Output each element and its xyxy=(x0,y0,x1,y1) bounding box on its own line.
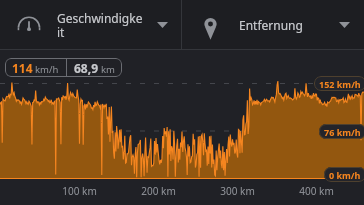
staticText: 114 xyxy=(12,60,33,76)
staticText: 200 km xyxy=(141,184,176,198)
staticText: 76 km/h xyxy=(324,126,361,138)
staticText: 100 km xyxy=(62,184,97,198)
staticText: 400 km xyxy=(299,184,334,198)
staticText: km xyxy=(101,63,115,76)
button[interactable]: Geschwindigkeit xyxy=(0,0,181,50)
staticText: Entfernung xyxy=(239,17,324,33)
staticText: 0 km/h xyxy=(329,169,361,181)
staticText: Geschwindigkeit xyxy=(57,10,144,41)
staticText: km/h xyxy=(35,63,59,76)
button[interactable]: 114 xyxy=(5,58,122,77)
button[interactable]: Entfernung xyxy=(182,0,364,50)
staticText: 68,9 xyxy=(74,60,99,76)
staticText: 300 km xyxy=(220,184,255,198)
staticText: 152 km/h xyxy=(319,78,361,90)
